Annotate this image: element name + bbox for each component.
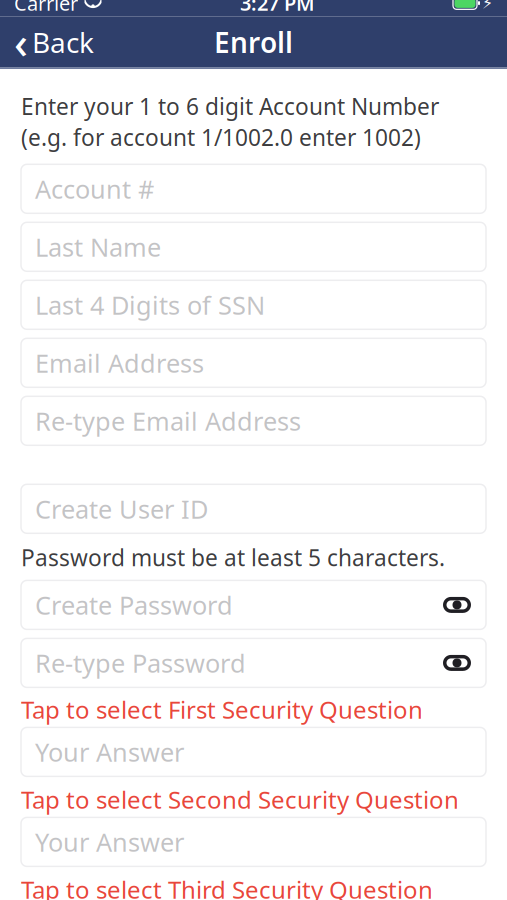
button[interactable]: Your Answer bbox=[21, 727, 486, 776]
staticText: Create Password bbox=[35, 588, 233, 622]
staticText: Enroll bbox=[214, 23, 293, 61]
button[interactable]: Last Name bbox=[21, 222, 486, 271]
staticText: Your Answer bbox=[35, 735, 184, 769]
button[interactable]: Re-type Password bbox=[21, 638, 486, 687]
staticText: ‹ bbox=[14, 14, 28, 70]
button[interactable]: Account # bbox=[21, 164, 486, 213]
button[interactable]: Re-type Email Address bbox=[21, 396, 486, 445]
staticText: Last 4 Digits of SSN bbox=[35, 288, 265, 322]
staticText: Your Answer bbox=[35, 825, 184, 859]
staticText: Carrier bbox=[14, 0, 78, 16]
button[interactable]: Last 4 Digits of SSN bbox=[21, 280, 486, 329]
button[interactable]: Email Address bbox=[21, 338, 486, 387]
staticText: Enter your 1 to 6 digit Account Number bbox=[21, 91, 439, 121]
staticText: Account # bbox=[35, 172, 154, 206]
staticText: Re-type Email Address bbox=[35, 404, 301, 438]
staticText: Tap to select Third Security Question bbox=[21, 873, 433, 900]
staticText: Last Name bbox=[35, 230, 161, 264]
button[interactable]: ‹ bbox=[0, 17, 108, 68]
button[interactable]: Your Answer bbox=[21, 817, 486, 866]
staticText: 3:27 PM bbox=[240, 0, 315, 16]
button[interactable]: Tap to select Second Security Question bbox=[21, 786, 486, 812]
button[interactable]: Tap to select Third Security Question bbox=[21, 876, 486, 900]
button[interactable]: Create User ID bbox=[21, 484, 486, 533]
staticText: Tap to select First Security Question bbox=[21, 693, 423, 725]
button[interactable]: Create Password bbox=[21, 580, 486, 629]
staticText: (e.g. for account 1/1002.0 enter 1002) bbox=[21, 122, 421, 152]
button[interactable]: Tap to select First Security Question bbox=[21, 696, 486, 722]
staticText: Back bbox=[32, 23, 94, 61]
staticText: Email Address bbox=[35, 346, 204, 380]
staticText: ⚡︎ bbox=[482, 0, 493, 12]
staticText: Password must be at least 5 characters. bbox=[21, 542, 445, 572]
staticText: Re-type Password bbox=[35, 646, 246, 680]
staticText: Create User ID bbox=[35, 492, 208, 526]
staticText: Tap to select Second Security Question bbox=[21, 783, 459, 815]
